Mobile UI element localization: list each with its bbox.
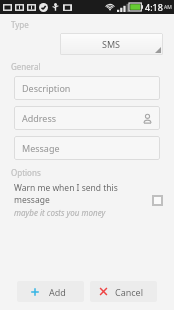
staticText: Warn me when I send this message [14,182,146,206]
button[interactable]: Address [14,106,160,130]
staticText: Address [22,112,57,124]
button[interactable]: Message [14,136,160,160]
staticText: Description [22,82,71,94]
button[interactable]: Cancel [90,281,157,302]
button[interactable]: SMS [60,33,163,55]
other: Pick contact [142,113,153,124]
staticText: General [11,61,41,72]
staticText: maybe it costs you money [14,207,106,218]
staticText: SMS [102,38,121,50]
staticText: AM [164,4,172,11]
staticText: Add [49,286,66,298]
button[interactable]: Warn me toggle [152,195,163,206]
staticText: Cancel [115,286,144,298]
button[interactable]: Description [14,76,160,100]
staticText: Type [11,19,29,30]
button[interactable]: Add [17,281,84,302]
staticText: Options [11,167,41,178]
staticText: Message [22,142,60,154]
staticText: 4:18 [145,1,163,13]
button[interactable]: Warn me when I send this message [14,182,163,218]
